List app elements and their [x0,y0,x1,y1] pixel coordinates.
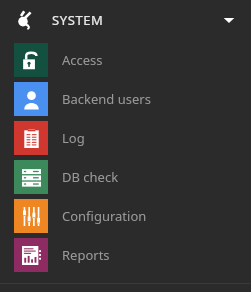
staticText: Configuration [62,207,147,225]
staticText: Access [62,51,103,69]
button[interactable]: SYSTEM [0,0,251,40]
staticText: Log [62,129,85,147]
button[interactable]: DB check [0,157,251,196]
button[interactable]: Access [0,40,251,79]
staticText: SYSTEM [52,11,104,29]
button[interactable]: Reports [0,235,251,274]
staticText: Reports [62,246,110,264]
other: Expand [217,8,241,32]
staticText: Backend users [62,90,151,108]
button[interactable]: Backend users [0,79,251,118]
button[interactable]: Log [0,118,251,157]
staticText: DB check [62,168,119,186]
button[interactable]: Configuration [0,196,251,235]
